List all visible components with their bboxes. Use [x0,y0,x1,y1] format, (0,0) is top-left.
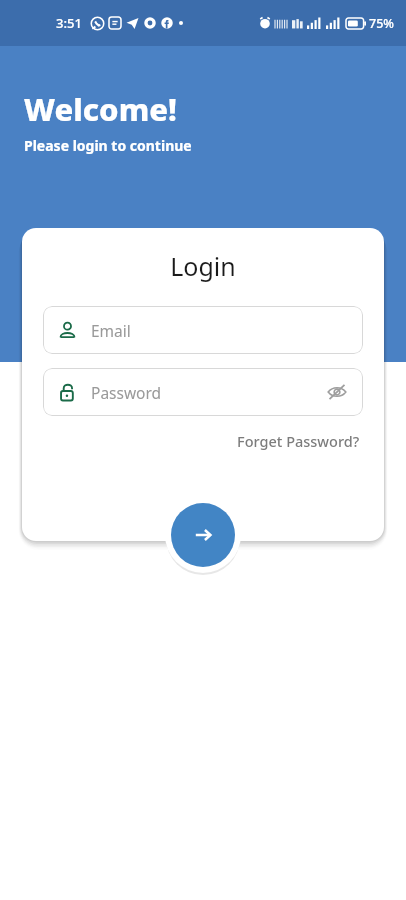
staticText: 3:51 [56,14,82,32]
staticText: 75% [369,15,394,32]
staticText: Welcome! [24,88,177,130]
staticText: Password [91,382,162,403]
button[interactable]: Email field [43,306,363,354]
staticText: Forget Password? [237,431,360,451]
button[interactable]: Password field [43,368,363,416]
staticText: Please login to continue [24,136,192,155]
button[interactable]: Forget Password? [235,428,362,454]
button[interactable]: Show password [325,380,349,404]
button[interactable]: Login [171,503,235,567]
staticText: Login [22,249,384,283]
staticText: Email [91,320,131,341]
